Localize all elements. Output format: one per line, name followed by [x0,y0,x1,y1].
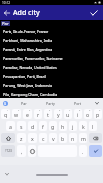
button[interactable]: v [49,133,57,143]
button[interactable]: Google search [0,98,10,108]
staticText: Pila, Kampong Cham, Cambodia [3,92,58,97]
staticText: j [72,123,74,130]
button[interactable]: Parbhani, Maharashtra, India [0,36,103,45]
button[interactable]: d [28,121,37,131]
staticText: G [4,102,7,106]
staticText: 10:12 [2,1,11,5]
button[interactable]: Paris, Ile-de-France, France [0,27,103,36]
button[interactable]: i [74,109,82,119]
button[interactable]: p [94,109,102,119]
staticText: ?123 [5,149,12,153]
staticText: o [86,111,90,118]
staticText: Paris, Ile-de-France, France [3,29,49,34]
button[interactable]: y [54,109,62,119]
button[interactable]: u [64,109,72,119]
staticText: z [20,135,23,142]
button[interactable]: Search [89,145,102,157]
button[interactable]: a [6,121,15,131]
button[interactable]: Pila, Kampong Cham, Cambodia [0,90,103,98]
staticText: s [20,123,23,130]
staticText: 8 [79,109,81,112]
button[interactable]: l [89,121,97,131]
staticText: 9 [89,109,91,112]
button[interactable]: Delete [89,133,102,143]
staticText: Parbhani, Maharashtra, India [3,38,53,43]
button[interactable]: Emoji [28,145,36,157]
button[interactable]: c [39,133,47,143]
staticText: 5 [49,109,51,112]
button[interactable]: Paradise, Nevada, United States [0,63,103,72]
staticText: b [61,135,65,142]
staticText: e [26,111,29,118]
button[interactable]: m [79,133,87,143]
button[interactable]: Port [64,98,91,108]
staticText: Add city [13,8,40,18]
button[interactable]: Parung, West Java, Indonesia [0,81,103,90]
button[interactable]: ?123 [1,145,15,157]
staticText: 6 [59,109,61,112]
staticText: Par [2,21,9,26]
button[interactable]: Expand suggestions [91,98,103,108]
staticText: Pesuapantan, Pará, Brazil [3,74,46,79]
staticText: t [47,111,49,118]
staticText: l [92,123,94,130]
staticText: , [21,148,23,155]
button[interactable]: z [17,133,26,143]
staticText: 2 [18,109,20,112]
button[interactable]: Par [2,21,9,26]
staticText: d [31,123,35,130]
button[interactable]: Par [10,98,37,108]
staticText: 0 [99,109,101,112]
staticText: h [61,123,65,130]
button[interactable]: j [69,121,77,131]
button[interactable]: Hide keyboard [0,165,14,183]
button[interactable]: w [12,109,21,119]
button[interactable]: Pesuapantan, Pará, Brazil [0,72,103,81]
staticText: g [51,123,55,130]
button[interactable]: t [44,109,52,119]
button[interactable]: Navigate up [0,5,13,20]
button[interactable]: o [84,109,92,119]
button[interactable]: f [39,121,47,131]
button[interactable]: . [79,145,87,157]
staticText: u [66,111,70,118]
button[interactable]: q [1,109,10,119]
staticText: i [77,111,79,118]
staticText: 1 [7,109,9,112]
button[interactable]: Party [37,98,64,108]
button[interactable]: k [79,121,87,131]
staticText: x [31,135,34,142]
button[interactable]: r [34,109,42,119]
button[interactable]: g [49,121,57,131]
staticText: m [81,135,86,142]
staticText: w [14,111,19,118]
button[interactable]: s [17,121,26,131]
button[interactable]: n [69,133,77,143]
button[interactable]: Paramaribo, Paramaribo, Suriname [0,54,103,63]
staticText: Parung, West Java, Indonesia [3,83,52,88]
staticText: n [71,135,75,142]
staticText: Paramaribo, Paramaribo, Suriname [3,56,63,61]
button[interactable]: e [23,109,32,119]
button[interactable]: , [17,145,26,157]
staticText: q [4,111,8,118]
staticText: p [96,111,100,118]
staticText: y [57,111,60,118]
staticText: c [42,135,45,142]
button[interactable]: Paraná, Entre Ríos, Argentina [0,45,103,54]
button[interactable]: h [59,121,67,131]
staticText: 3 [29,109,31,112]
button[interactable]: x [28,133,37,143]
staticText: Party [46,101,55,106]
button[interactable]: Shift [1,133,15,143]
staticText: . [82,148,84,155]
button[interactable]: b [59,133,67,143]
staticText: Par [21,101,27,106]
staticText: 4 [39,109,41,112]
staticText: 7 [69,109,71,112]
staticText: v [52,135,55,142]
button[interactable]: Done [85,5,103,20]
staticText: r [37,111,40,118]
staticText: Port [74,101,82,106]
